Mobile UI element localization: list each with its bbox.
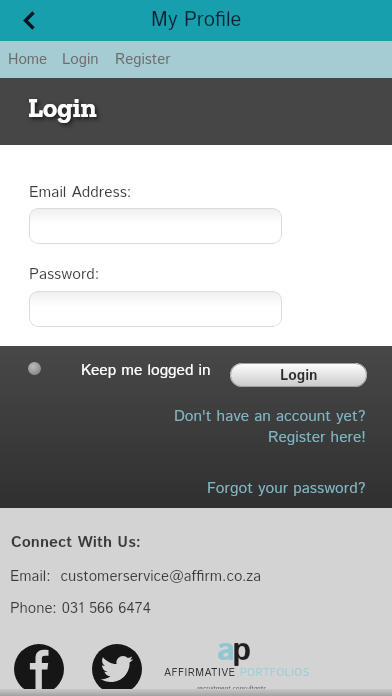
staticText: Home [8,49,48,71]
staticText: Email: customerservice@affirm.co.za [10,566,262,588]
button[interactable]: Register here! [268,426,366,448]
staticText: My Profile [151,6,242,35]
button[interactable] [29,291,282,327]
button[interactable]: Forgot your password? [207,477,366,499]
button[interactable]: Login [56,41,93,78]
staticText: Password: [29,263,100,285]
staticText: Connect With Us: [11,531,141,553]
staticText: recruitment consultants [197,684,266,693]
staticText: Keep me logged in [81,359,211,381]
staticText: Phone: 031 566 6474 [10,598,151,620]
staticText: Login [28,92,97,124]
staticText: p [232,627,252,675]
staticText: AFFIRMATIVE [164,665,240,680]
staticText: Login [280,365,318,386]
staticText: Login [62,49,99,71]
button[interactable] [29,208,282,244]
staticText: Register [115,49,171,71]
button[interactable] [14,644,64,694]
staticText: a [217,627,236,675]
button[interactable]: Login [230,363,367,387]
button[interactable] [0,0,40,40]
staticText: PORTFOLIOS [240,665,310,680]
button[interactable]: Home [2,41,42,78]
button[interactable] [92,644,142,694]
staticText: Email Address: [29,181,132,203]
button[interactable]: Don't have an account yet? [174,405,366,427]
button[interactable]: Register [109,41,165,78]
button[interactable] [20,354,48,382]
